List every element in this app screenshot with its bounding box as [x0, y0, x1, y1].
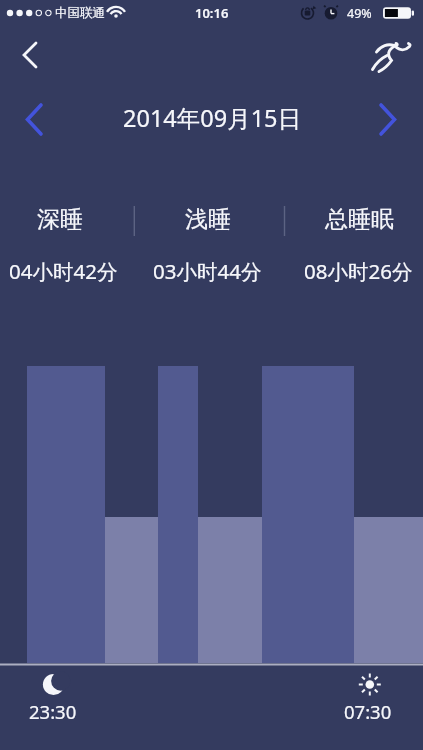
staticText: 49%: [347, 5, 372, 22]
staticText: 中国联通: [55, 5, 105, 21]
staticText: 10:16: [195, 4, 229, 22]
staticText: 浅睡: [185, 205, 231, 234]
staticText: 03小时44分: [153, 257, 262, 285]
button[interactable]: [12, 38, 50, 74]
staticText: 08小时26分: [304, 257, 413, 285]
staticText: 总睡眠: [325, 205, 394, 234]
button[interactable]: 2014年09月15日: [102, 98, 322, 138]
staticText: 04小时42分: [9, 257, 118, 285]
staticText: 23:30: [29, 699, 77, 724]
button[interactable]: [370, 98, 404, 140]
staticText: 07:30: [344, 699, 392, 724]
staticText: 2014年09月15日: [123, 102, 302, 134]
button[interactable]: [18, 98, 52, 140]
staticText: 深睡: [37, 205, 83, 234]
